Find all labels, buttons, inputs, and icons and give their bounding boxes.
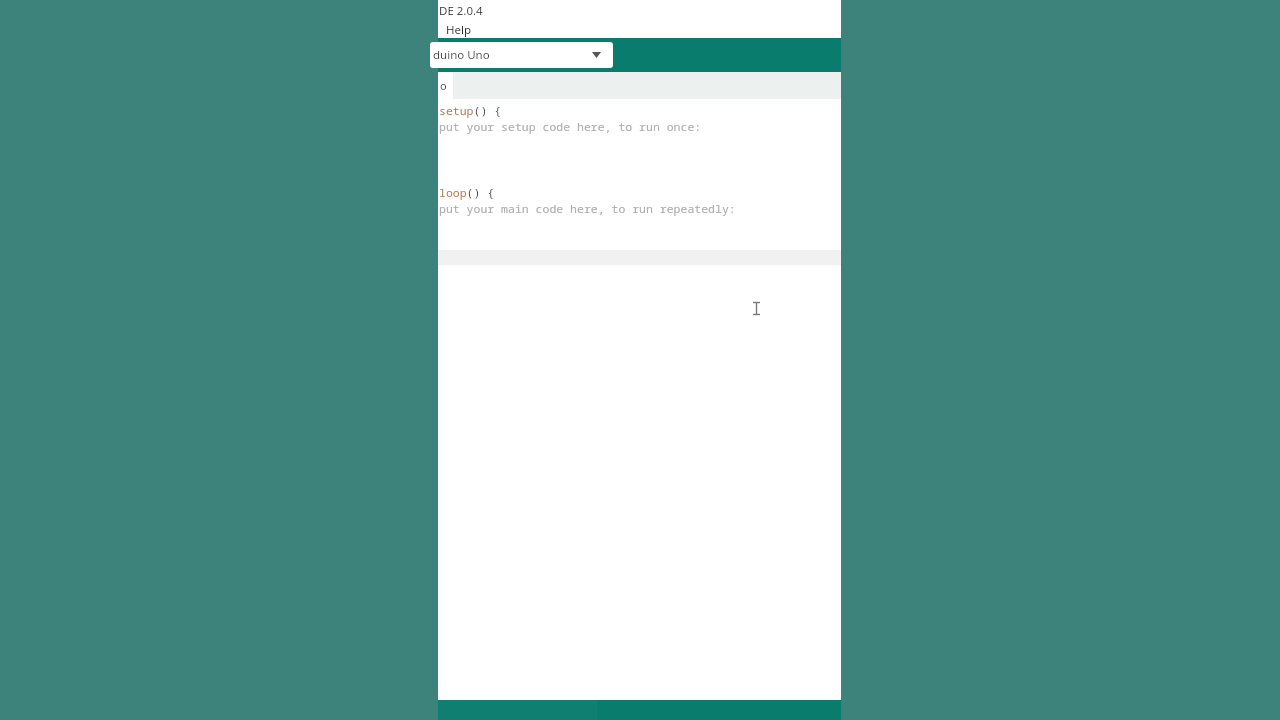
button[interactable]: o [438, 72, 453, 99]
staticText: put your setup code here, to run once: [439, 119, 702, 135]
staticText: setup() { [439, 103, 502, 119]
button[interactable]: Help [446, 22, 472, 38]
button[interactable]: Select board [430, 42, 613, 68]
staticText: duino Uno [433, 47, 490, 63]
staticText: o [440, 78, 447, 93]
staticText: put your main code here, to run repeated… [439, 201, 736, 217]
staticText: DE 2.0.4 [439, 3, 483, 19]
staticText: Help [446, 22, 472, 38]
staticText: loop() { [439, 185, 495, 201]
